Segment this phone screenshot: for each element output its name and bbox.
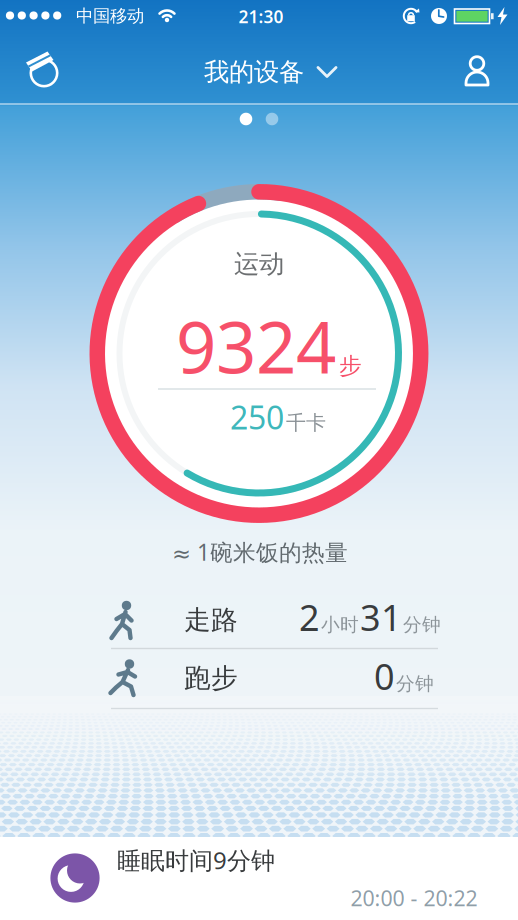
staticText: 中国移动 <box>76 5 144 27</box>
staticText: 31 <box>360 593 402 641</box>
staticText: 9324 <box>176 299 336 393</box>
staticText: 21:30 <box>238 5 283 28</box>
staticText: 分钟 <box>403 613 441 636</box>
staticText: 千卡 <box>286 410 326 435</box>
staticText: ≈ 1碗米饭的热量 <box>172 537 348 567</box>
staticText: 走路 <box>184 604 238 636</box>
staticText: 2 <box>299 593 320 641</box>
staticText: 20:00 - 20:22 <box>350 884 477 912</box>
staticText: 250 <box>230 396 284 438</box>
staticText: 步 <box>339 352 362 380</box>
button[interactable]: 走路 <box>111 590 439 648</box>
button[interactable]: 第 2 页 <box>0 0 518 920</box>
staticText: 跑步 <box>184 662 238 694</box>
staticText: 小时 <box>321 613 359 636</box>
button[interactable]: 我的设备 <box>164 40 354 104</box>
staticText: 我的设备 <box>204 56 304 87</box>
button[interactable]: 睡眠时间9分钟 <box>0 837 518 920</box>
staticText: 0 <box>374 652 395 700</box>
button[interactable]: 设备 <box>0 0 518 920</box>
staticText: 睡眠时间9分钟 <box>117 844 275 876</box>
staticText: 运动 <box>234 248 284 279</box>
button[interactable]: 第 1 页 <box>0 0 518 920</box>
button[interactable]: 我的 <box>0 0 518 920</box>
button[interactable]: 跑步 <box>111 649 439 707</box>
staticText: 分钟 <box>396 672 434 695</box>
